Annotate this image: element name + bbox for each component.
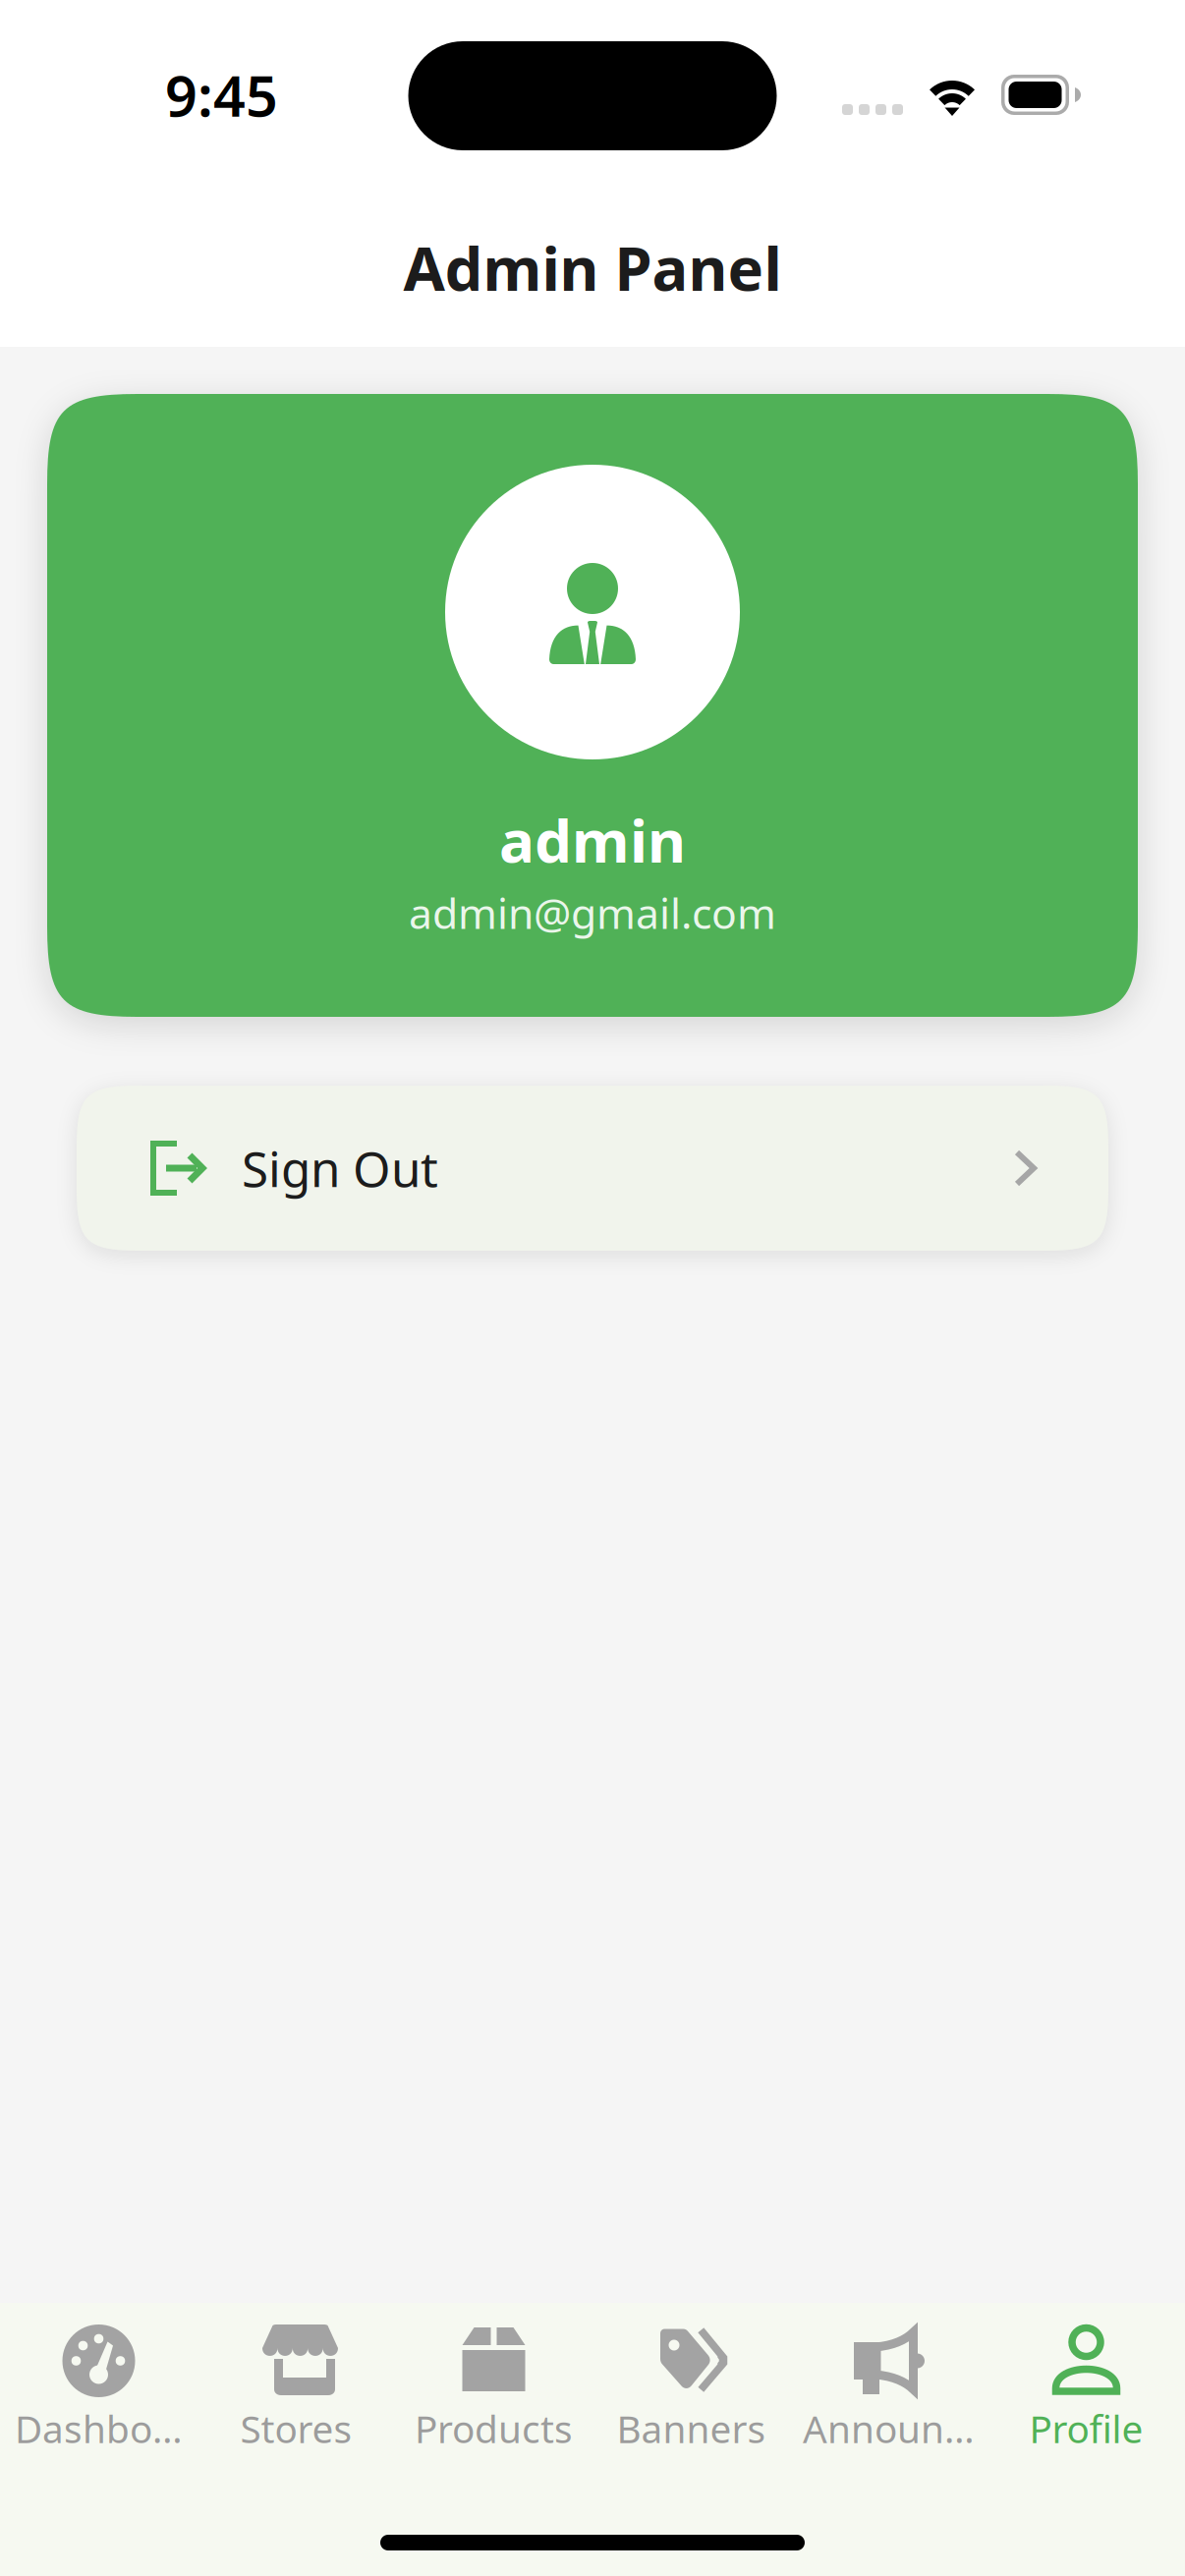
staticText: 9:45 [165, 57, 278, 132]
staticText: Profile [1029, 2403, 1143, 2453]
staticText: admin@gmail.com [409, 885, 776, 941]
button[interactable]: Dashboard [0, 2303, 197, 2470]
button[interactable]: Products [395, 2303, 592, 2470]
staticText: admin [499, 801, 686, 879]
staticText: Announ… [803, 2403, 975, 2453]
staticText: Admin Panel [403, 228, 782, 308]
button[interactable]: Announcements [790, 2303, 987, 2470]
button[interactable]: Profile [987, 2303, 1185, 2470]
staticText: Banners [617, 2403, 766, 2453]
staticText: Dashbo… [15, 2403, 183, 2453]
button[interactable]: Banners [592, 2303, 790, 2470]
staticText: Sign Out [242, 1136, 438, 1200]
staticText: Stores [240, 2403, 352, 2453]
button[interactable]: Stores [197, 2303, 395, 2470]
button[interactable]: Sign Out [77, 1086, 1108, 1251]
staticText: Products [415, 2403, 573, 2453]
